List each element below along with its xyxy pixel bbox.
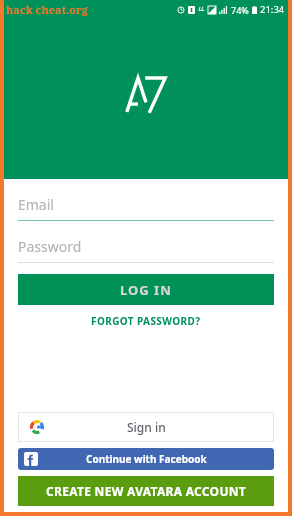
button[interactable]: LOG IN (18, 274, 274, 305)
staticText: 74% (231, 4, 249, 16)
staticText: LOG IN (120, 281, 172, 299)
staticText: Continue with Facebook (86, 452, 207, 466)
button[interactable]: FORGOT PASSWORD? (4, 314, 288, 328)
staticText: CREATE NEW AVATARA ACCOUNT (46, 483, 247, 499)
staticText: FORGOT PASSWORD? (91, 314, 201, 328)
staticText: 21:34 (260, 3, 285, 16)
button[interactable]: Continue with Facebook (18, 448, 274, 470)
staticText: hack cheat.org (6, 2, 88, 17)
staticText: Email (18, 195, 54, 214)
button[interactable]: Sign in (18, 412, 274, 442)
staticText: Password (18, 237, 82, 256)
staticText: Sign in (127, 419, 166, 435)
button[interactable]: CREATE NEW AVATARA ACCOUNT (18, 476, 274, 506)
